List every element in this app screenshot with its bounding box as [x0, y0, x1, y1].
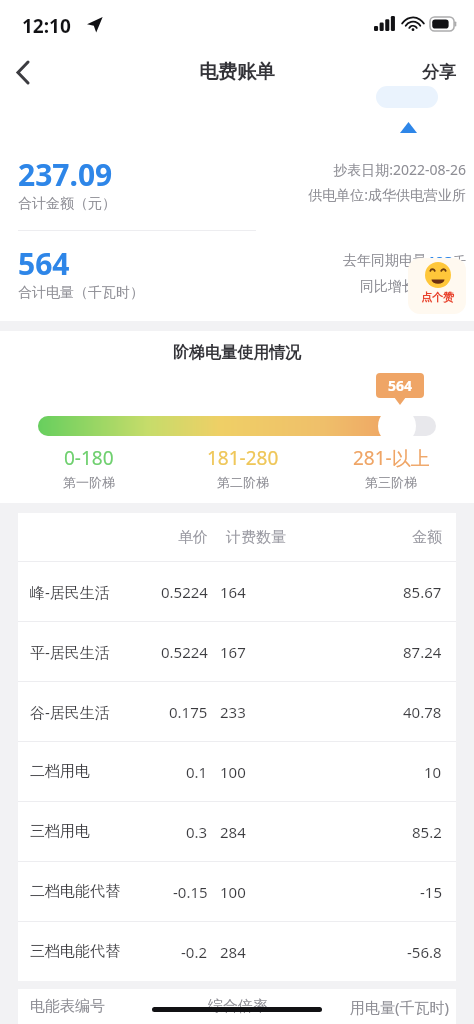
- staticText: 三档电能代替: [30, 942, 120, 961]
- staticText: 计费数量: [226, 528, 286, 547]
- button[interactable]: Usage level: [378, 407, 416, 445]
- staticText: 点个赞: [421, 290, 454, 304]
- staticText: 164: [220, 582, 246, 602]
- staticText: 284: [220, 942, 246, 962]
- staticText: 千: [453, 253, 466, 269]
- staticText: 二档电能代替: [30, 882, 120, 901]
- staticText: -0.15: [173, 882, 208, 902]
- staticText: 0.3: [186, 822, 208, 842]
- staticText: 564: [388, 376, 413, 395]
- staticText: 用电量(千瓦时): [350, 997, 450, 1017]
- staticText: 284: [220, 822, 246, 842]
- staticText: 85.67: [403, 582, 442, 602]
- staticText: 100: [220, 762, 246, 782]
- staticText: 85.2: [412, 822, 442, 842]
- staticText: 第二阶梯: [217, 474, 269, 490]
- staticText: 100: [220, 882, 246, 902]
- staticText: 二档用电: [30, 762, 90, 781]
- staticText: 281-以上: [353, 445, 430, 471]
- staticText: 电能表编号: [30, 997, 105, 1016]
- staticText: -56.8: [407, 942, 442, 962]
- staticText: 综合倍率: [208, 997, 268, 1016]
- staticText: 三档用电: [30, 822, 90, 841]
- staticText: 金额: [412, 528, 442, 547]
- staticText: 供电单位:成华供电营业所: [308, 185, 466, 204]
- staticText: -0.2: [181, 942, 208, 962]
- staticText: 合计电量（千瓦时）: [18, 284, 144, 302]
- staticText: -15: [420, 882, 442, 902]
- button[interactable]: 三档电能代替: [18, 922, 456, 981]
- staticText: 0.1: [186, 762, 208, 782]
- staticText: 去年同期电量: [343, 252, 427, 270]
- button[interactable]: 二档用电: [18, 742, 456, 801]
- staticText: 分享: [422, 62, 456, 83]
- staticText: 12:10: [22, 13, 71, 39]
- staticText: 193: [427, 251, 453, 271]
- staticText: 电费账单: [199, 60, 275, 84]
- staticText: 平-居民生活: [30, 642, 110, 662]
- button[interactable]: 二档电能代替: [18, 862, 456, 921]
- button[interactable]: 峰-居民生活: [18, 562, 456, 621]
- staticText: 0.175: [169, 702, 208, 722]
- staticText: 10: [424, 762, 442, 782]
- staticText: 233: [220, 702, 246, 722]
- button[interactable]: 三档用电: [18, 802, 456, 861]
- staticText: 同比增长: [360, 278, 416, 296]
- staticText: 峰-居民生活: [30, 582, 110, 602]
- button[interactable]: 平-居民生活: [18, 622, 456, 681]
- staticText: 0-180: [64, 445, 114, 471]
- staticText: 合计金额（元）: [18, 195, 116, 213]
- staticText: 167: [220, 642, 246, 662]
- staticText: 阶梯电量使用情况: [173, 343, 301, 363]
- button[interactable]: 分享: [404, 52, 474, 93]
- button[interactable]: 谷-居民生活: [18, 682, 456, 741]
- staticText: 第三阶梯: [365, 474, 417, 490]
- staticText: 192.2: [416, 277, 455, 297]
- staticText: 0.5224: [161, 582, 208, 602]
- staticText: 抄表日期:2022-08-26: [333, 160, 466, 179]
- staticText: 564: [18, 243, 70, 284]
- staticText: 87.24: [403, 642, 442, 662]
- staticText: 181-280: [207, 445, 279, 471]
- staticText: 谷-居民生活: [30, 702, 110, 722]
- staticText: 40.78: [403, 702, 442, 722]
- button[interactable]: Back: [0, 49, 46, 95]
- staticText: 第一阶梯: [63, 474, 115, 490]
- staticText: 0.5224: [161, 642, 208, 662]
- staticText: 单价: [178, 528, 208, 547]
- staticText: 237.09: [18, 154, 113, 195]
- button[interactable]: Like: [408, 258, 466, 314]
